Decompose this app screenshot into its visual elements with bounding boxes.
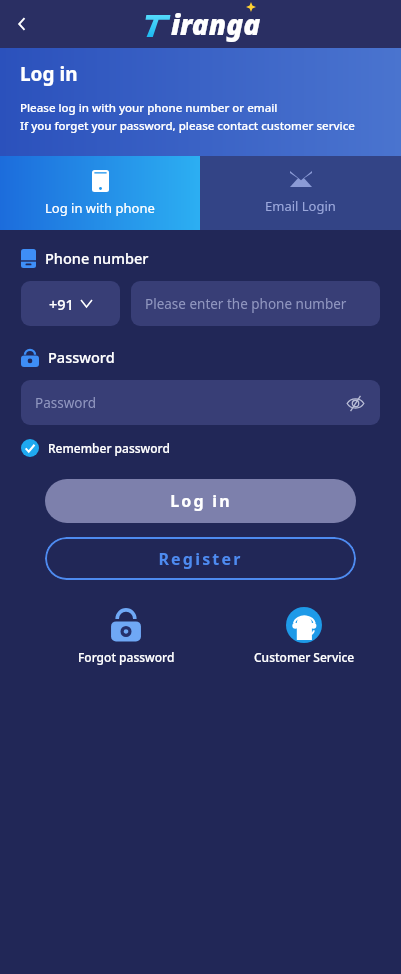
button[interactable]: Log in bbox=[45, 479, 356, 523]
staticText: If you forget your password, please cont… bbox=[20, 118, 355, 134]
button[interactable]: Back bbox=[0, 2, 44, 46]
button[interactable]: Log in with phone bbox=[0, 156, 200, 230]
staticText: Remember password bbox=[48, 440, 170, 456]
staticText: Customer Service bbox=[254, 649, 355, 665]
staticText: Phone number bbox=[45, 248, 149, 268]
staticText: Please log in with your phone number or … bbox=[20, 100, 278, 116]
staticText: Password bbox=[48, 347, 115, 367]
staticText: Password bbox=[35, 394, 97, 412]
staticText: Email Login bbox=[265, 197, 336, 215]
button[interactable]: +91 bbox=[21, 281, 120, 326]
button[interactable]: Remember password bbox=[21, 439, 170, 457]
button[interactable]: Register bbox=[45, 537, 356, 580]
staticText: Forgot password bbox=[78, 649, 175, 665]
button[interactable]: Password bbox=[21, 380, 380, 425]
staticText: +91 bbox=[49, 294, 74, 314]
staticText: Log in with phone bbox=[45, 199, 155, 217]
staticText: iranga bbox=[171, 5, 261, 43]
button[interactable]: Customer Service bbox=[229, 607, 379, 665]
staticText: Log in bbox=[20, 61, 78, 87]
button[interactable]: Email Login bbox=[200, 156, 401, 230]
button[interactable]: Please enter the phone number bbox=[131, 281, 380, 326]
staticText: Log in bbox=[170, 490, 232, 512]
button[interactable]: Forgot password bbox=[51, 607, 201, 665]
staticText: Please enter the phone number bbox=[145, 295, 347, 313]
staticText: Register bbox=[158, 548, 243, 570]
button[interactable]: Toggle password visibility bbox=[342, 390, 368, 416]
